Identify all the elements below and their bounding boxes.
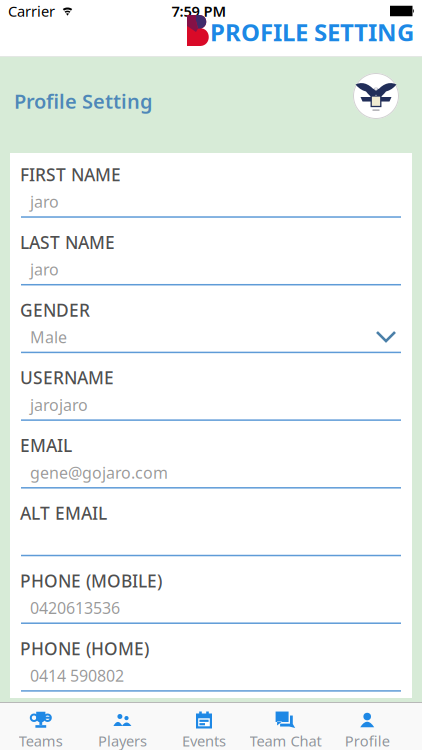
staticText: Male bbox=[30, 326, 67, 348]
staticText: Profile Setting bbox=[14, 88, 153, 114]
staticText: EMAIL bbox=[20, 434, 72, 457]
staticText: Profile bbox=[345, 731, 390, 750]
button[interactable]: Players bbox=[82, 709, 163, 750]
button[interactable]: ALT EMAIL bbox=[10, 501, 412, 569]
staticText: Teams bbox=[19, 731, 63, 750]
button[interactable]: PHONE (MOBILE) bbox=[10, 569, 412, 637]
staticText: Players bbox=[98, 731, 147, 750]
staticText: jaro bbox=[30, 259, 59, 280]
button[interactable]: Home bbox=[187, 15, 211, 46]
staticText: GENDER bbox=[20, 298, 90, 321]
button[interactable]: FIRST NAME bbox=[10, 163, 412, 231]
staticText: jarojaro bbox=[30, 394, 88, 415]
staticText: Carrier bbox=[8, 1, 55, 21]
button[interactable]: Team Chat bbox=[245, 709, 326, 750]
staticText: USERNAME bbox=[20, 366, 114, 389]
staticText: PHONE (MOBILE) bbox=[20, 569, 162, 592]
staticText: ALT EMAIL bbox=[20, 501, 107, 524]
button[interactable]: Profile photo bbox=[353, 73, 399, 119]
staticText: Team Chat bbox=[250, 731, 322, 750]
button[interactable]: Events bbox=[163, 709, 245, 750]
button[interactable]: LAST NAME bbox=[10, 231, 412, 298]
staticText: Events bbox=[182, 731, 226, 750]
button[interactable]: USERNAME bbox=[10, 366, 412, 434]
staticText: gene@gojaro.com bbox=[30, 462, 168, 483]
staticText: LAST NAME bbox=[20, 231, 115, 254]
staticText: PHONE (HOME) bbox=[20, 637, 149, 660]
staticText: 0414 590802 bbox=[30, 665, 124, 686]
button[interactable]: EMAIL bbox=[10, 434, 412, 501]
staticText: 0420613536 bbox=[30, 597, 120, 618]
staticText: 7:59 PM bbox=[171, 1, 226, 21]
button[interactable]: Teams bbox=[0, 709, 82, 750]
button[interactable]: GENDER bbox=[10, 298, 412, 366]
staticText: PROFILE SETTING bbox=[210, 16, 414, 48]
staticText: jaro bbox=[30, 191, 59, 212]
button[interactable]: Profile bbox=[326, 709, 408, 750]
staticText: FIRST NAME bbox=[20, 163, 121, 186]
button[interactable]: PHONE (HOME) bbox=[10, 637, 412, 695]
